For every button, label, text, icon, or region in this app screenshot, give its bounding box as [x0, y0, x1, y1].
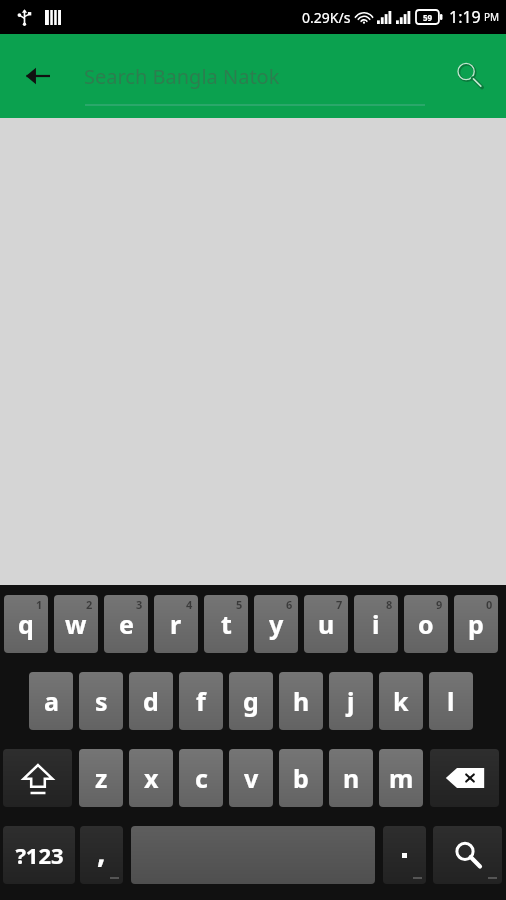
staticText: r	[170, 607, 182, 641]
staticText: s	[95, 684, 108, 718]
staticText: d	[143, 684, 159, 718]
button[interactable]: x	[129, 749, 173, 807]
button[interactable]: s	[79, 672, 123, 730]
staticText: z	[95, 761, 108, 795]
staticText: e	[119, 607, 134, 641]
staticText: Search Bangla Natok	[84, 63, 280, 90]
button[interactable]: r	[154, 595, 198, 653]
button[interactable]: y	[254, 595, 298, 653]
button[interactable]: i	[354, 595, 398, 653]
staticText: h	[293, 684, 310, 718]
staticText: x	[144, 761, 159, 795]
button[interactable]: Space	[131, 826, 375, 884]
button[interactable]: l	[429, 672, 473, 730]
button[interactable]: p	[454, 595, 498, 653]
staticText: j	[347, 684, 355, 718]
button[interactable]: Comma	[80, 826, 123, 884]
staticText: o	[418, 607, 434, 641]
staticText: f	[196, 684, 206, 718]
staticText: a	[44, 684, 59, 718]
button[interactable]: o	[404, 595, 448, 653]
button[interactable]: k	[379, 672, 423, 730]
staticText: p	[468, 607, 484, 641]
button[interactable]: n	[329, 749, 373, 807]
button[interactable]: Shift	[3, 749, 72, 807]
staticText: 1	[36, 597, 43, 612]
staticText: y	[269, 607, 284, 641]
staticText: k	[393, 684, 409, 718]
button[interactable]: j	[329, 672, 373, 730]
staticText: ,	[97, 831, 106, 872]
button[interactable]: Search	[442, 48, 498, 104]
staticText: v	[244, 761, 259, 795]
staticText: g	[243, 684, 259, 718]
staticText: 59	[423, 12, 433, 23]
staticText: 6	[286, 597, 293, 612]
button[interactable]: g	[229, 672, 273, 730]
staticText: ?123	[15, 840, 64, 870]
button[interactable]: ?123	[3, 826, 75, 884]
button[interactable]: z	[79, 749, 123, 807]
staticText: 8	[386, 597, 393, 612]
button[interactable]: Backspace	[430, 749, 499, 807]
staticText: c	[195, 761, 208, 795]
staticText: q	[18, 607, 34, 641]
button[interactable]: h	[279, 672, 323, 730]
staticText: 3	[136, 597, 143, 612]
button[interactable]: w	[54, 595, 98, 653]
staticText: 2	[86, 597, 93, 612]
button[interactable]: u	[304, 595, 348, 653]
staticText: 4	[186, 597, 193, 612]
staticText: 0.29K/s	[302, 8, 351, 27]
button[interactable]: b	[279, 749, 323, 807]
staticText: 0	[486, 597, 493, 612]
staticText: n	[343, 761, 360, 795]
button[interactable]: e	[104, 595, 148, 653]
staticText: 7	[336, 597, 343, 612]
button[interactable]: m	[379, 749, 423, 807]
staticText: i	[372, 607, 380, 641]
button[interactable]: q	[4, 595, 48, 653]
button[interactable]: Search Bangla Natok	[84, 63, 422, 90]
staticText: PM	[484, 10, 500, 24]
button[interactable]: d	[129, 672, 173, 730]
staticText: 9	[436, 597, 443, 612]
button[interactable]: v	[229, 749, 273, 807]
staticText: t	[221, 607, 232, 641]
button[interactable]: f	[179, 672, 223, 730]
staticText: w	[65, 607, 87, 641]
button[interactable]: c	[179, 749, 223, 807]
button[interactable]: a	[29, 672, 73, 730]
staticText: 5	[236, 597, 243, 612]
staticText: u	[318, 607, 335, 641]
staticText: 1:19	[449, 6, 481, 28]
button[interactable]: Period	[383, 826, 426, 884]
staticText: m	[389, 761, 414, 795]
button[interactable]: Back	[10, 48, 66, 104]
staticText: b	[293, 761, 309, 795]
button[interactable]: Search	[433, 826, 502, 884]
staticText: l	[447, 684, 455, 718]
button[interactable]: t	[204, 595, 248, 653]
